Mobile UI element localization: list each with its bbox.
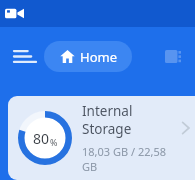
button[interactable]: Open navigation menu — [8, 39, 42, 73]
staticText: 18,03 GB / 22,58 GB — [82, 144, 181, 174]
button[interactable]: Storage manager — [159, 42, 187, 70]
staticText: 80 — [33, 129, 50, 148]
staticText: Home — [80, 48, 117, 66]
button[interactable]: 80 — [8, 96, 195, 180]
staticText: Internal Storage — [82, 102, 181, 138]
other: Screen recording active — [5, 7, 24, 20]
staticText: % — [50, 136, 58, 148]
button[interactable]: Home — [44, 41, 132, 72]
